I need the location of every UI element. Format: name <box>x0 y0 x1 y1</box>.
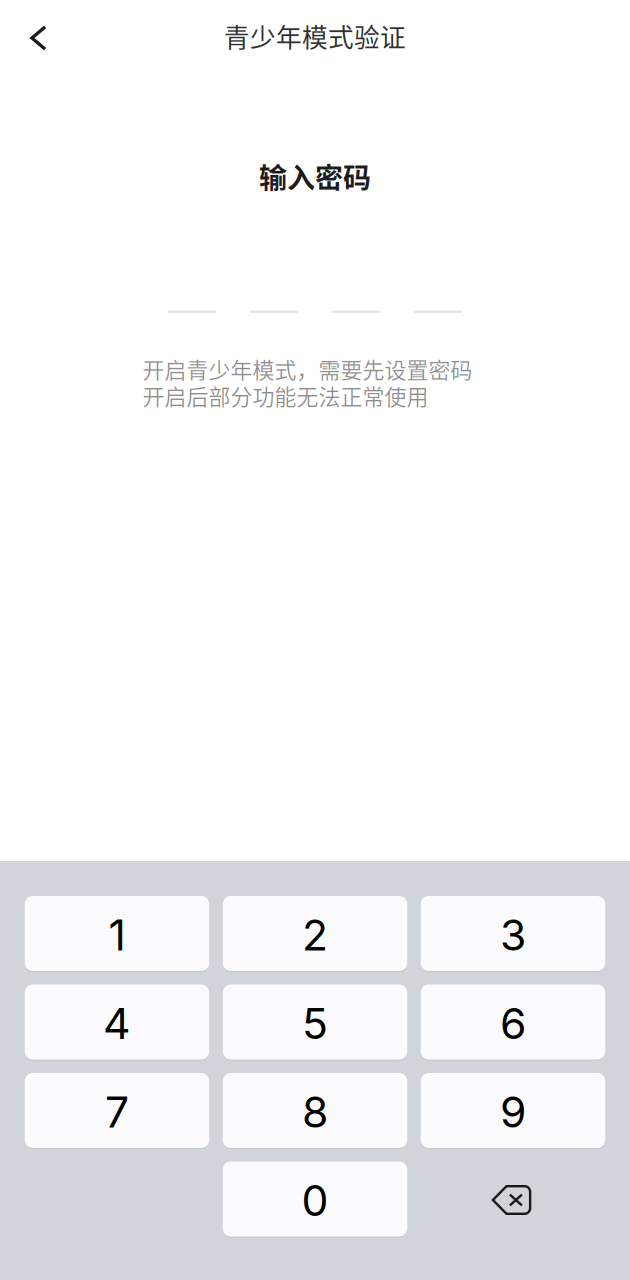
staticText: 5 <box>302 998 328 1049</box>
staticText: 6 <box>500 998 526 1049</box>
button[interactable]: 7 <box>25 1073 209 1148</box>
staticText: 4 <box>103 998 131 1049</box>
button[interactable]: 6 <box>421 984 605 1059</box>
staticText: 开启青少年模式，需要先设置密码 <box>142 353 472 384</box>
button[interactable]: 3 <box>421 896 605 971</box>
button[interactable]: 4 <box>25 984 209 1059</box>
staticText: 青少年模式验证 <box>224 17 406 55</box>
button[interactable]: Back <box>0 1 77 75</box>
staticText: 2 <box>302 909 328 961</box>
staticText: 9 <box>500 1086 526 1138</box>
staticText: 开启后部分功能无法正常使用 <box>142 379 428 411</box>
staticText: 0 <box>301 1175 328 1226</box>
staticText: 输入密码 <box>259 156 371 196</box>
button[interactable]: 1 <box>25 896 209 971</box>
staticText: 3 <box>500 909 526 961</box>
button[interactable]: 5 <box>223 984 407 1059</box>
staticText: 8 <box>302 1086 328 1138</box>
button[interactable]: Delete <box>421 1161 605 1236</box>
staticText: 1 <box>108 909 125 961</box>
button[interactable]: 2 <box>223 896 407 971</box>
button[interactable]: 0 <box>223 1161 407 1236</box>
button[interactable]: 9 <box>421 1073 605 1148</box>
staticText: 7 <box>105 1086 129 1138</box>
button[interactable]: 8 <box>223 1073 407 1148</box>
